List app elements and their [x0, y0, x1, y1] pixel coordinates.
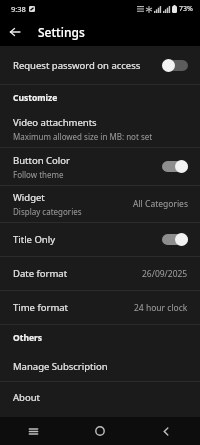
button[interactable]: Time format: [0, 291, 200, 324]
staticText: 26/09/2025: [142, 268, 188, 280]
button[interactable]: Back: [133, 417, 200, 445]
staticText: Date format: [13, 267, 68, 280]
button[interactable]: Title Only: [0, 223, 200, 256]
staticText: Request password on access: [13, 59, 141, 72]
staticText: Customize: [13, 92, 58, 104]
staticText: Maximum allowed size in MB: not set: [13, 131, 153, 142]
button[interactable]: Recent apps: [0, 417, 66, 445]
staticText: 24 hour clock: [134, 302, 188, 314]
staticText: About: [13, 391, 40, 404]
button[interactable]: Back: [0, 17, 30, 46]
button[interactable]: Date format: [0, 257, 200, 290]
staticText: Display categories: [13, 206, 82, 217]
staticText: Button Color: [13, 154, 70, 167]
staticText: Time format: [13, 301, 69, 314]
button[interactable]: Home: [66, 417, 133, 445]
staticText: Video attachments: [13, 116, 97, 129]
staticText: Manage Subscription: [13, 360, 108, 373]
staticText: Others: [13, 332, 43, 344]
staticText: 9:38: [11, 4, 26, 14]
staticText: Title Only: [13, 233, 56, 246]
staticText: All Categories: [133, 198, 188, 210]
button[interactable]: Video attachments: [0, 111, 200, 147]
button[interactable]: Widget: [0, 186, 200, 222]
button[interactable]: About: [0, 382, 200, 412]
staticText: Widget: [13, 191, 45, 204]
button[interactable]: Manage Subscription: [0, 351, 200, 381]
staticText: Settings: [38, 24, 85, 40]
button[interactable]: Request password on access: [0, 46, 200, 84]
button[interactable]: Button Color: [0, 148, 200, 185]
staticText: Follow theme: [13, 169, 64, 180]
staticText: 73%: [179, 4, 193, 14]
